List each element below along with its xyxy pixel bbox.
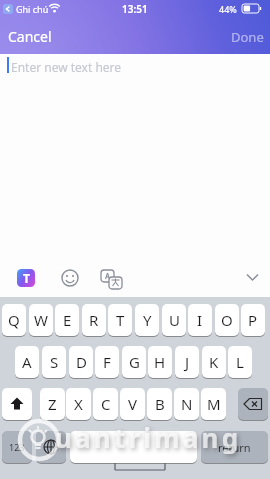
button[interactable] [245, 272, 261, 284]
staticText: T [23, 270, 30, 286]
staticText: return [218, 440, 251, 455]
button[interactable]: U [162, 304, 186, 336]
staticText: A [22, 352, 32, 372]
button[interactable]: M [201, 388, 226, 420]
button[interactable]: O [215, 304, 239, 336]
button[interactable] [100, 269, 124, 291]
button[interactable]: R [82, 304, 106, 336]
staticText: Cancel [8, 27, 52, 46]
button[interactable] [61, 269, 79, 287]
staticText: P [248, 310, 258, 330]
button[interactable]: 123 [2, 431, 32, 463]
button[interactable]: X [66, 388, 91, 420]
staticText: C [101, 394, 111, 414]
staticText: H [154, 352, 166, 372]
staticText: B [155, 394, 165, 414]
staticText: 123 [9, 441, 25, 453]
staticText: uantrimang [55, 420, 242, 455]
button[interactable]: S [42, 346, 66, 378]
button[interactable]: Q [2, 304, 26, 336]
button[interactable]: D [69, 346, 93, 378]
staticText: W [34, 310, 48, 330]
button[interactable]: I [188, 304, 212, 336]
staticText: S [50, 352, 59, 372]
staticText: Ghi chú [16, 3, 49, 15]
staticText: J [185, 352, 190, 372]
button[interactable]: T [108, 304, 132, 336]
button[interactable]: K [202, 346, 226, 378]
staticText: N [181, 394, 193, 414]
button[interactable]: Done [231, 28, 264, 46]
button[interactable]: P [241, 304, 265, 336]
button[interactable]: W [29, 304, 53, 336]
staticText: Y [143, 310, 152, 330]
staticText: V [128, 394, 138, 414]
staticText: M [207, 394, 221, 414]
button[interactable] [36, 431, 66, 463]
staticText: I [197, 310, 203, 330]
button[interactable]: Z [40, 388, 65, 420]
staticText: Z [48, 394, 57, 414]
button[interactable]: C [93, 388, 118, 420]
button[interactable]: return [201, 431, 268, 463]
button[interactable]: H [148, 346, 172, 378]
staticText: Q [8, 310, 20, 330]
button[interactable]: Cancel [8, 27, 52, 46]
button[interactable]: A [15, 346, 39, 378]
button[interactable] [238, 388, 268, 420]
staticText: U [169, 310, 180, 330]
staticText: 13:51 [122, 2, 148, 16]
button[interactable]: F [95, 346, 119, 378]
button[interactable]: E [55, 304, 79, 336]
button[interactable]: L [228, 346, 252, 378]
staticText: Done [231, 28, 264, 46]
staticText: E [63, 310, 72, 330]
staticText: Enter new text here [11, 59, 122, 75]
button[interactable]: Y [135, 304, 159, 336]
button[interactable]: T [17, 269, 35, 287]
button[interactable]: V [120, 388, 145, 420]
staticText: T [116, 310, 125, 330]
staticText: X [74, 394, 83, 414]
button[interactable] [70, 431, 197, 463]
staticText: R [89, 310, 99, 330]
staticText: D [76, 352, 87, 372]
staticText: G [129, 352, 140, 372]
staticText: O [221, 310, 233, 330]
staticText: 44% [219, 3, 237, 15]
staticText: K [209, 352, 219, 372]
button[interactable]: G [122, 346, 146, 378]
button[interactable]: J [175, 346, 199, 378]
button[interactable]: N [174, 388, 199, 420]
button[interactable] [2, 388, 32, 420]
staticText: F [103, 352, 111, 372]
staticText: L [236, 352, 244, 372]
button[interactable]: B [147, 388, 172, 420]
